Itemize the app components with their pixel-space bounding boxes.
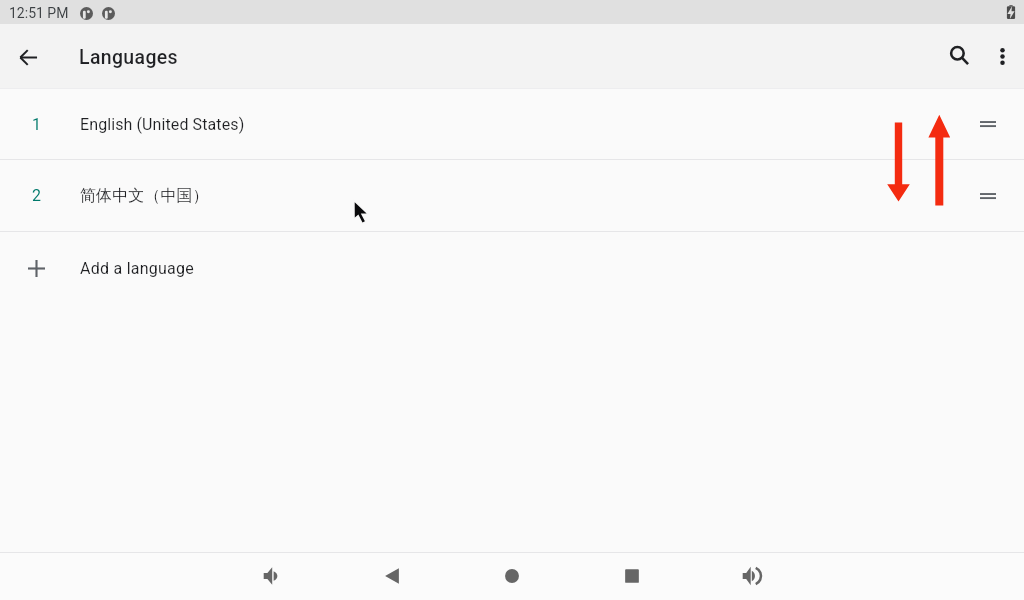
staticText: Languages: [79, 46, 178, 69]
staticText: 1: [32, 115, 41, 134]
staticText: 12:51 PM: [9, 5, 69, 21]
button[interactable]: Reorder: [965, 173, 1011, 219]
staticText: 简体中文（中国）: [80, 186, 209, 206]
button[interactable]: Search: [928, 33, 976, 81]
staticText: Add a language: [80, 259, 195, 278]
button[interactable]: Volume down: [248, 552, 296, 600]
staticText: English (United States): [80, 115, 245, 134]
button[interactable]: 2: [0, 160, 1024, 231]
button[interactable]: Navigate up: [0, 29, 56, 85]
button[interactable]: Volume up: [728, 552, 776, 600]
button[interactable]: 1: [0, 89, 1024, 159]
button[interactable]: Reorder: [965, 101, 1011, 147]
button[interactable]: Add a language: [0, 232, 1024, 303]
button[interactable]: Back: [368, 552, 416, 600]
button[interactable]: Recent apps: [608, 552, 656, 600]
staticText: 2: [32, 186, 41, 205]
button[interactable]: More options: [976, 33, 1024, 81]
button[interactable]: Home: [488, 552, 536, 600]
